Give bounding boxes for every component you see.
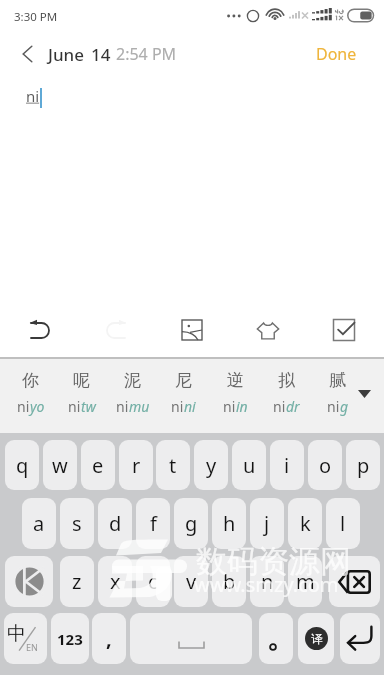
staticText: 123 — [57, 629, 83, 649]
button[interactable]: 逆 — [210, 359, 261, 431]
button[interactable]: v — [174, 556, 208, 607]
button[interactable]: t — [156, 440, 190, 490]
staticText: i — [284, 452, 290, 479]
button[interactable]: 尼 — [158, 359, 209, 431]
staticText: ni — [26, 86, 40, 106]
staticText: h — [223, 510, 236, 537]
button[interactable]: o — [308, 440, 342, 490]
button[interactable]: Comma — [92, 613, 126, 664]
staticText: 译 — [311, 631, 323, 646]
button[interactable]: k — [288, 498, 322, 549]
button[interactable]: b — [212, 556, 246, 607]
button[interactable]: i — [270, 440, 304, 490]
button[interactable]: f — [136, 498, 170, 549]
button[interactable]: m — [288, 556, 322, 607]
button[interactable]: Checklist — [318, 302, 370, 357]
staticText: ni — [116, 397, 129, 416]
staticText: Done — [316, 43, 357, 65]
staticText: 14 — [91, 43, 111, 66]
button[interactable]: g — [174, 498, 208, 549]
button[interactable]: p — [346, 440, 380, 490]
button[interactable]: 腻 — [312, 359, 363, 431]
button[interactable]: 呢 — [56, 359, 107, 431]
staticText: b — [223, 568, 236, 595]
button[interactable]: 拟 — [261, 359, 312, 431]
staticText: 你 — [22, 370, 39, 391]
staticText: 中 — [7, 622, 26, 646]
staticText: e — [92, 452, 104, 479]
staticText: s — [72, 510, 82, 537]
button[interactable]: Done — [306, 34, 366, 74]
button[interactable]: Switch input language — [4, 613, 47, 664]
staticText: ni — [184, 397, 196, 416]
button[interactable]: c — [136, 556, 170, 607]
button[interactable]: Numbers — [51, 613, 89, 664]
button[interactable]: y — [194, 440, 228, 490]
staticText: v — [186, 568, 197, 595]
staticText: 腻 — [329, 370, 346, 391]
staticText: a — [33, 510, 45, 537]
button[interactable]: h — [212, 498, 246, 549]
button[interactable]: Period — [259, 613, 293, 664]
staticText: f — [150, 510, 157, 537]
staticText: l — [340, 510, 346, 537]
staticText: EN — [26, 641, 38, 653]
staticText: 2:54 PM — [116, 43, 177, 65]
button[interactable]: Enter — [340, 613, 380, 664]
staticText: 逆 — [227, 370, 244, 391]
button[interactable]: e — [81, 440, 115, 490]
staticText: ni — [327, 397, 340, 416]
button[interactable]: Theme — [242, 302, 294, 357]
button[interactable]: 泥 — [107, 359, 158, 431]
button[interactable]: Backspace — [329, 556, 380, 607]
staticText: ni — [171, 397, 184, 416]
button[interactable]: Back — [8, 34, 46, 74]
staticText: 3:30 PM — [14, 9, 58, 25]
button[interactable]: Shift — [5, 556, 53, 607]
button[interactable]: l — [326, 498, 360, 549]
staticText: ni — [17, 397, 30, 416]
button[interactable]: n — [250, 556, 284, 607]
button[interactable]: Translate — [298, 613, 334, 664]
button[interactable]: s — [60, 498, 94, 549]
staticText: ni — [68, 397, 81, 416]
button[interactable]: q — [5, 440, 39, 490]
button[interactable]: j — [250, 498, 284, 549]
button[interactable]: u — [232, 440, 266, 490]
staticText: y — [206, 452, 217, 479]
staticText: n — [261, 568, 274, 595]
button[interactable]: w — [43, 440, 77, 490]
button[interactable]: a — [22, 498, 56, 549]
button[interactable]: r — [119, 440, 153, 490]
button[interactable]: 你 — [5, 359, 56, 431]
staticText: tw — [81, 397, 96, 416]
staticText: 数码资源网 — [196, 542, 351, 581]
staticText: j — [264, 510, 270, 537]
staticText: g — [340, 397, 349, 416]
button[interactable]: Space — [130, 613, 252, 664]
staticText: o — [319, 452, 332, 479]
button[interactable]: Undo — [14, 302, 66, 357]
staticText: yo — [30, 397, 45, 416]
staticText: in — [236, 397, 248, 416]
staticText: p — [357, 452, 370, 479]
button[interactable]: More candidates — [353, 385, 375, 403]
button[interactable]: Insert image — [166, 302, 218, 357]
staticText: x — [110, 568, 121, 595]
staticText: k — [300, 510, 311, 537]
staticText: c — [148, 568, 158, 595]
staticText: ni — [273, 397, 286, 416]
staticText: 尼 — [175, 370, 192, 391]
staticText: u — [243, 452, 256, 479]
staticText: 呢 — [73, 370, 90, 391]
staticText: q — [16, 452, 29, 479]
staticText: mu — [129, 397, 150, 416]
button[interactable]: z — [60, 556, 94, 607]
staticText: dr — [286, 397, 300, 416]
staticText: z — [72, 568, 82, 595]
staticText: June — [48, 43, 85, 66]
button[interactable]: d — [98, 498, 132, 549]
button[interactable]: x — [98, 556, 132, 607]
staticText: , — [106, 625, 112, 652]
